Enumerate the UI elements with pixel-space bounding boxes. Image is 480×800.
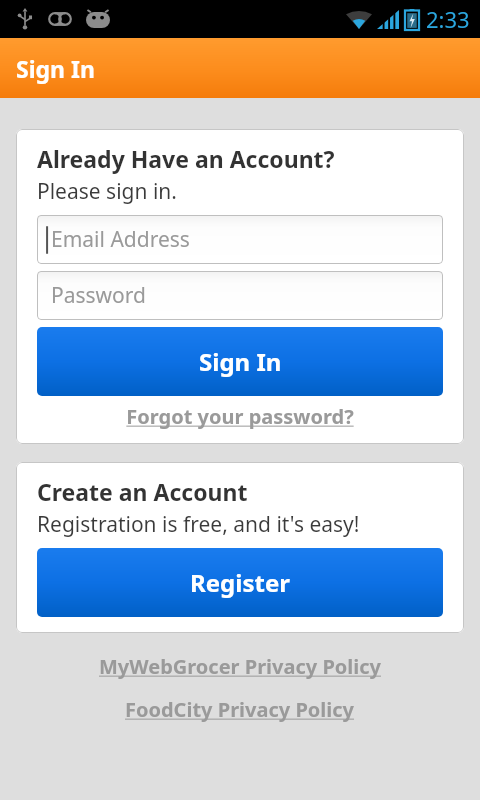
staticText: Please sign in. [37,177,177,206]
button[interactable]: Forgot your password? [37,401,443,432]
staticText: Sign In [199,345,282,378]
button[interactable]: FoodCity Privacy Policy [121,692,359,727]
button[interactable]: Email Address [37,215,443,264]
staticText: Email Address [51,225,190,254]
staticText: Password [51,281,146,310]
staticText: Create an Account [37,476,248,507]
staticText: Registration is free, and it's easy! [37,510,360,539]
button[interactable]: Register [37,548,443,617]
staticText: MyWebGrocer Privacy Policy [99,653,381,680]
button[interactable]: MyWebGrocer Privacy Policy [95,649,385,684]
staticText: Forgot your password? [126,403,354,430]
staticText: 2:33 [426,4,470,34]
staticText: Sign In [16,53,95,84]
button[interactable]: Password [37,271,443,320]
button[interactable]: Sign In [37,327,443,396]
staticText: Already Have an Account? [37,143,335,174]
staticText: FoodCity Privacy Policy [125,696,355,723]
staticText: Register [190,566,290,599]
